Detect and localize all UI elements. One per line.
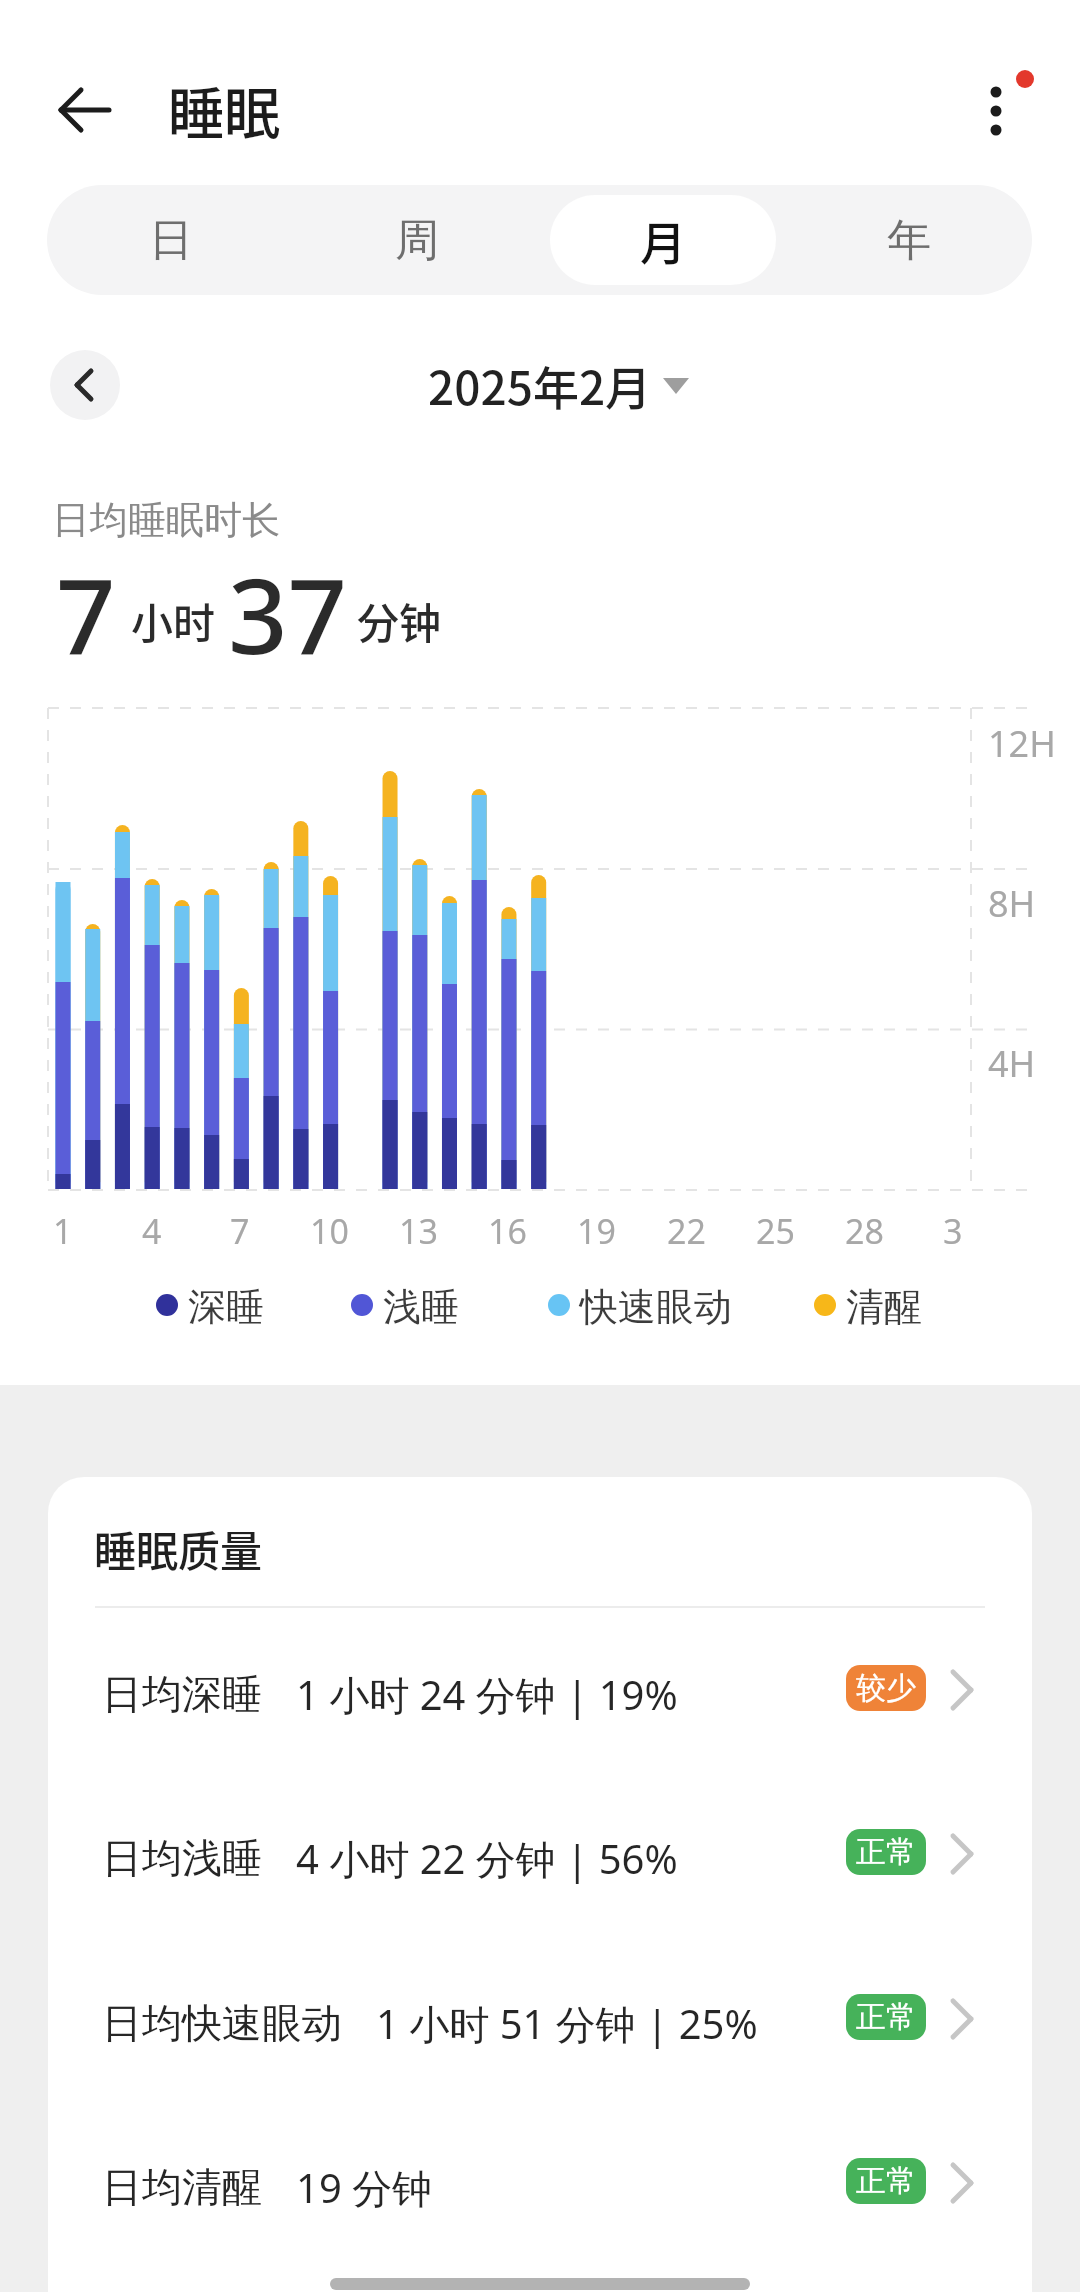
staticText: 小时	[131, 590, 216, 651]
staticText: 日均清醒	[102, 2162, 262, 2212]
staticText: 19 分钟	[296, 2160, 433, 2215]
staticText: 22	[667, 1208, 706, 1254]
button[interactable]: 月	[550, 195, 776, 285]
staticText: 睡眠质量	[94, 1518, 263, 1579]
staticText: 分钟	[357, 590, 442, 651]
staticText: 日均浅睡	[102, 1833, 262, 1883]
staticText: 日	[149, 213, 193, 268]
button[interactable]: 日均深睡	[60, 1637, 1020, 1751]
staticText: 快速眼动	[580, 1283, 732, 1331]
button[interactable]: 日	[57, 195, 284, 285]
staticText: 睡眠	[168, 69, 280, 150]
staticText: 4H	[988, 1039, 1036, 1088]
staticText: 1	[53, 1208, 73, 1254]
staticText: 1 小时 51 分钟 | 25%	[376, 1996, 758, 2051]
button[interactable]	[950, 58, 1050, 150]
staticText: 3	[943, 1208, 963, 1254]
button[interactable]: 周	[304, 195, 530, 285]
staticText: 日均睡眠时长	[52, 496, 280, 544]
staticText: 4 小时 22 分钟 | 56%	[296, 1831, 678, 1886]
button[interactable]: 日均清醒	[60, 2130, 1020, 2244]
staticText: 清醒	[846, 1283, 922, 1331]
staticText: 1 小时 24 分钟 | 19%	[296, 1667, 678, 1722]
staticText: 日均深睡	[102, 1669, 262, 1719]
staticText: 12H	[988, 719, 1056, 768]
button[interactable]: 2025年2月	[340, 350, 740, 420]
staticText: 正常	[856, 1998, 916, 2036]
staticText: 7	[230, 1208, 250, 1254]
staticText: 37	[228, 543, 347, 663]
button[interactable]	[50, 350, 120, 420]
staticText: 月	[640, 207, 686, 274]
staticText: 4	[142, 1208, 162, 1254]
staticText: 19	[577, 1208, 616, 1254]
button[interactable]	[40, 75, 130, 145]
button[interactable]: 日均浅睡	[60, 1801, 1020, 1915]
staticText: 10	[310, 1208, 349, 1254]
staticText: 7	[56, 543, 116, 663]
staticText: 深睡	[188, 1283, 264, 1331]
staticText: 正常	[856, 1833, 916, 1871]
staticText: 正常	[856, 2162, 916, 2200]
staticText: 25	[756, 1208, 795, 1254]
button[interactable]: 日均快速眼动	[60, 1966, 1020, 2080]
staticText: 2025年2月	[428, 352, 652, 419]
staticText: 年	[887, 213, 931, 268]
staticText: 浅睡	[383, 1283, 459, 1331]
staticText: 周	[395, 213, 439, 268]
staticText: 13	[399, 1208, 438, 1254]
staticText: 8H	[988, 879, 1036, 928]
staticText: 日均快速眼动	[102, 1998, 342, 2048]
button[interactable]: 年	[796, 195, 1022, 285]
staticText: 较少	[856, 1669, 916, 1707]
staticText: 16	[488, 1208, 527, 1254]
staticText: 28	[845, 1208, 884, 1254]
